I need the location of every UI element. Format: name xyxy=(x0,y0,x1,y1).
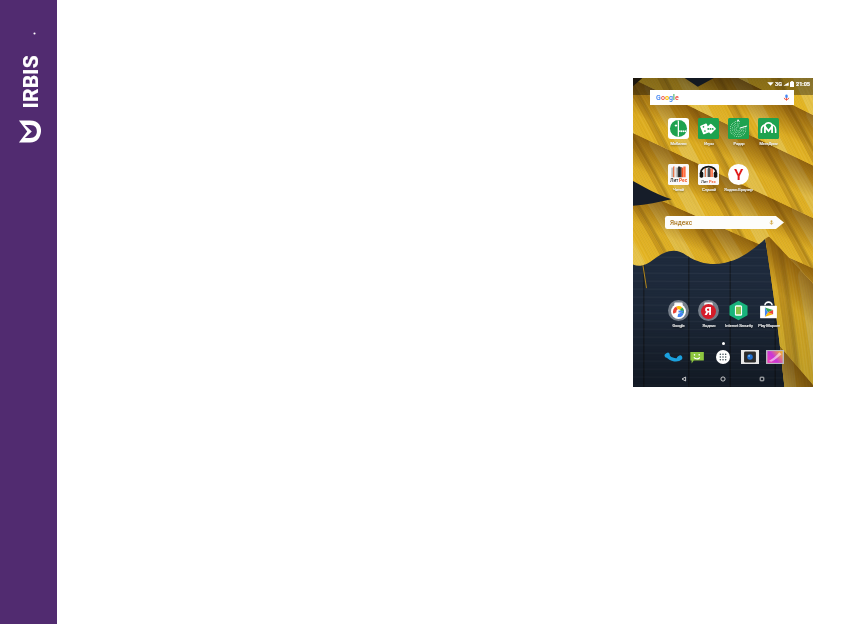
button[interactable]: G xyxy=(650,90,794,105)
button[interactable]: Яндекс xyxy=(665,216,784,229)
staticText: Рес xyxy=(679,178,688,184)
staticText: Читай xyxy=(673,187,684,192)
button[interactable]: Лит xyxy=(656,164,701,192)
button[interactable]: Recents xyxy=(757,374,767,384)
staticText: Y xyxy=(734,166,744,184)
button[interactable]: Мобилес xyxy=(656,118,701,146)
staticText: МегаДиск xyxy=(759,141,778,146)
staticText: Play Маркет xyxy=(758,323,780,328)
staticText: IRBIS xyxy=(18,54,40,108)
staticText: e xyxy=(675,94,679,102)
button[interactable]: Я xyxy=(686,300,731,328)
staticText: o xyxy=(665,94,669,102)
button[interactable]: Phone xyxy=(664,348,682,366)
button[interactable]: Игры xyxy=(686,118,731,146)
staticText: Лит xyxy=(670,178,679,184)
button[interactable]: Google xyxy=(656,300,701,328)
staticText: Игры xyxy=(704,141,714,146)
button[interactable]: Лит xyxy=(686,164,731,192)
button[interactable]: Радар xyxy=(716,118,761,146)
button[interactable]: All apps xyxy=(714,348,732,366)
staticText: 21:05 xyxy=(796,81,810,87)
button[interactable]: Back xyxy=(679,374,689,384)
staticText: Яндекс.Браузер xyxy=(724,187,753,192)
staticText: G xyxy=(656,94,661,102)
button[interactable]: Camera xyxy=(741,348,759,366)
staticText: Internet Security xyxy=(725,323,753,328)
staticText: Google xyxy=(672,323,685,328)
button[interactable]: Y xyxy=(716,164,761,192)
staticText: Радар xyxy=(733,141,745,146)
staticText: Слушай xyxy=(702,187,716,192)
staticText: Рес xyxy=(709,179,716,184)
staticText: Яндекс xyxy=(670,219,693,227)
button[interactable]: МегаДиск xyxy=(746,118,791,146)
button[interactable]: Internet Security xyxy=(716,300,761,328)
staticText: Мобилес xyxy=(670,141,687,146)
staticText: Лит xyxy=(701,179,709,184)
staticText: 3G xyxy=(775,81,782,87)
button[interactable]: Photos xyxy=(766,348,784,366)
staticText: g xyxy=(669,94,673,102)
button[interactable]: Messages xyxy=(688,348,706,366)
staticText: Я xyxy=(705,305,712,318)
button[interactable]: Home xyxy=(718,374,728,384)
button[interactable]: Play Маркет xyxy=(746,300,791,328)
staticText: l xyxy=(673,94,675,102)
staticText: Яндекс xyxy=(702,323,716,328)
staticText: o xyxy=(661,94,665,102)
